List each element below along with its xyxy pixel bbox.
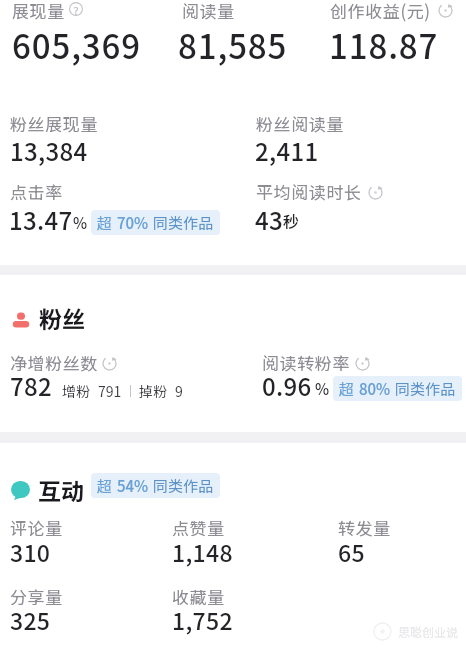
staticText: 粉丝: [39, 301, 85, 334]
staticText: 13,384: [10, 133, 88, 168]
staticText: 点击率: [10, 179, 63, 204]
staticText: 超: [97, 475, 113, 497]
staticText: 9: [175, 381, 183, 401]
staticText: 思聪创业说: [398, 623, 459, 640]
button[interactable]: Trend: [368, 185, 383, 200]
staticText: 展现量: [12, 0, 65, 23]
button[interactable]: Interactions: [11, 474, 84, 507]
staticText: 互动: [38, 473, 84, 506]
staticText: 收藏量: [172, 584, 225, 609]
staticText: 80%: [359, 378, 391, 400]
staticText: 81,585: [178, 21, 288, 69]
other: Interactions: [11, 481, 30, 500]
staticText: 43: [255, 202, 284, 237]
staticText: 同类作品: [153, 212, 214, 234]
staticText: 创作收益(元): [330, 0, 431, 23]
staticText: 1,752: [172, 603, 233, 636]
staticText: 超: [339, 378, 355, 400]
button[interactable]: 超: [91, 473, 220, 498]
staticText: 阅读量: [182, 0, 235, 23]
staticText: 118.87: [329, 21, 439, 69]
button[interactable]: 超: [91, 210, 220, 235]
button[interactable]: Trend: [355, 356, 370, 371]
staticText: 54%: [117, 475, 149, 497]
staticText: 同类作品: [153, 475, 214, 497]
staticText: 评论量: [10, 515, 63, 540]
other: Fans: [11, 309, 31, 329]
button[interactable]: Fans: [11, 302, 85, 335]
button[interactable]: Trend: [102, 356, 117, 371]
staticText: 同类作品: [395, 378, 456, 400]
staticText: 2,411: [255, 133, 319, 168]
button[interactable]: Help: [69, 2, 83, 16]
staticText: 310: [10, 535, 51, 568]
staticText: 1,148: [172, 535, 233, 568]
staticText: 点赞量: [172, 515, 225, 540]
staticText: 超: [97, 212, 113, 234]
staticText: 粉丝展现量: [10, 111, 98, 136]
staticText: 70%: [117, 212, 149, 234]
staticText: 平均阅读时长: [256, 179, 362, 204]
staticText: 791: [98, 381, 122, 401]
staticText: 净增粉丝数: [10, 350, 98, 375]
staticText: 65: [338, 535, 365, 568]
staticText: ?: [73, 2, 79, 16]
staticText: 秒: [283, 209, 300, 232]
staticText: 阅读转粉率: [262, 350, 350, 375]
staticText: 0.96: [262, 368, 312, 403]
staticText: 掉粉: [139, 381, 167, 401]
button[interactable]: Trend: [438, 3, 453, 18]
button[interactable]: 超: [333, 376, 462, 401]
staticText: %: [73, 212, 88, 234]
staticText: 粉丝阅读量: [256, 111, 344, 136]
staticText: 782: [10, 368, 53, 403]
staticText: 分享量: [10, 584, 63, 609]
staticText: 605,369: [12, 21, 141, 69]
staticText: 转发量: [338, 515, 391, 540]
staticText: %: [315, 378, 330, 400]
staticText: 增粉: [62, 381, 90, 401]
staticText: 13.47: [9, 202, 73, 237]
staticText: 325: [10, 603, 51, 636]
